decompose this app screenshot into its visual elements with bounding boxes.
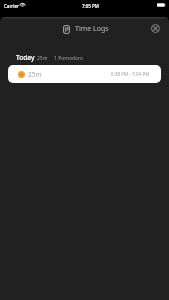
staticText: 6:38 PM - 7:04 PM (111, 71, 150, 77)
staticText: Carrier (4, 3, 19, 9)
staticText: 1 Pomodoro (54, 55, 84, 62)
staticText: 7:05 PM (82, 3, 99, 9)
staticText: 25m (28, 70, 42, 79)
staticText: 25m (37, 55, 48, 62)
button[interactable]: Close (149, 22, 162, 35)
staticText: Time Logs (75, 24, 109, 34)
button[interactable]: 25m (8, 65, 161, 83)
staticText: Today (16, 53, 35, 62)
